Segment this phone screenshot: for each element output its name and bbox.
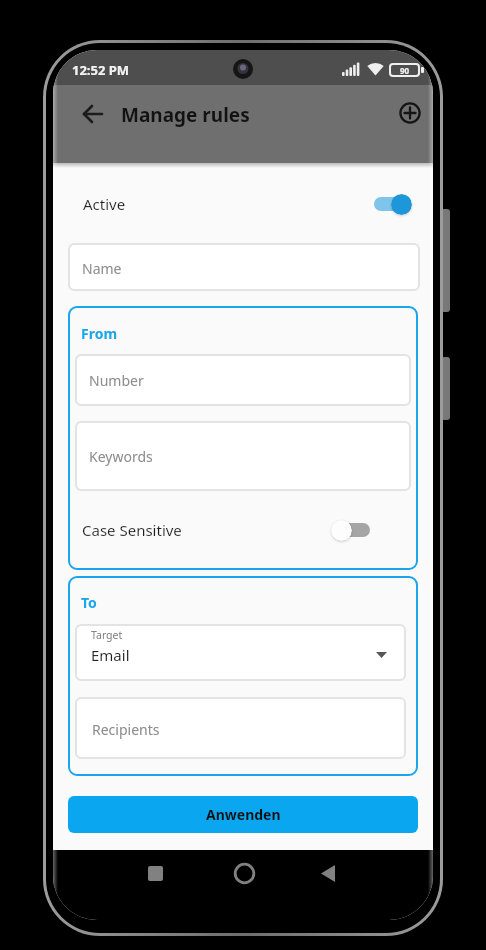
staticText: Recipients [92, 720, 160, 739]
button[interactable] [328, 517, 376, 543]
button[interactable]: Target [75, 624, 406, 681]
button[interactable]: Anwenden [68, 796, 418, 833]
staticText: Anwenden [206, 805, 281, 824]
button[interactable] [399, 102, 421, 124]
staticText: 12:52 PM [72, 61, 130, 79]
button[interactable]: Name [68, 243, 420, 291]
button[interactable]: Recipients [75, 697, 406, 759]
button[interactable] [233, 862, 256, 885]
staticText: Case Sensitive [82, 520, 182, 540]
staticText: To [81, 593, 97, 612]
staticText: Target [91, 628, 123, 642]
staticText: Name [82, 259, 122, 278]
staticText: Email [91, 645, 130, 665]
staticText: From [81, 324, 118, 343]
button[interactable] [82, 103, 104, 125]
staticText: Keywords [89, 447, 153, 466]
staticText: Number [89, 371, 144, 390]
button[interactable]: Number [75, 354, 411, 406]
button[interactable]: Keywords [75, 421, 411, 491]
button[interactable] [320, 865, 336, 882]
staticText: Active [83, 194, 126, 214]
staticText: 90 [400, 65, 410, 76]
staticText: Manage rules [121, 102, 250, 128]
button[interactable] [367, 191, 415, 217]
button[interactable] [148, 866, 163, 881]
